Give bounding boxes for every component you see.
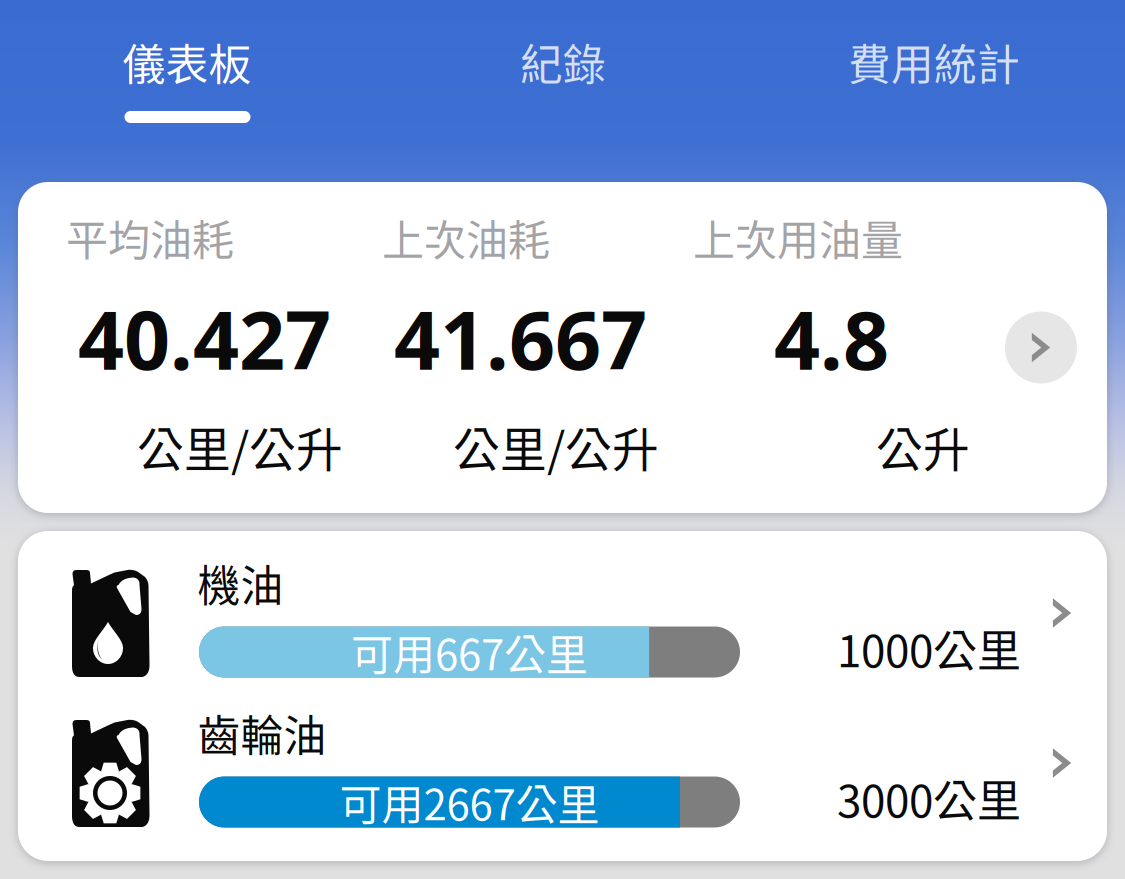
staticText: 公升 [876,413,970,480]
staticText: 1000公里 [837,616,1021,680]
staticText: 上次用油量 [693,207,903,268]
button[interactable]: 平均油耗 [18,182,1107,513]
staticText: 機油 [197,552,283,614]
staticText: 3000公里 [837,766,1021,830]
staticText: 可用2667公里 [339,772,599,832]
staticText: 齒輪油 [197,702,326,764]
button[interactable]: 紀錄 [438,2,688,142]
button[interactable]: 費用統計 [809,2,1059,142]
staticText: 可用667公里 [351,622,588,682]
staticText: 平均油耗 [66,207,234,268]
staticText: 4.8 [774,284,889,393]
button[interactable]: 儀表板 [62,2,312,142]
staticText: 儀表板 [122,31,251,93]
staticText: 紀錄 [520,31,606,93]
staticText: 上次油耗 [382,207,550,268]
button[interactable]: 機油 [18,538,1107,703]
staticText: 40.427 [78,284,331,393]
staticText: 費用統計 [848,31,1020,93]
staticText: 41.667 [394,284,647,393]
staticText: 公里/公升 [453,413,659,480]
button[interactable]: 齒輪油 [18,688,1107,853]
staticText: 公里/公升 [137,413,343,480]
